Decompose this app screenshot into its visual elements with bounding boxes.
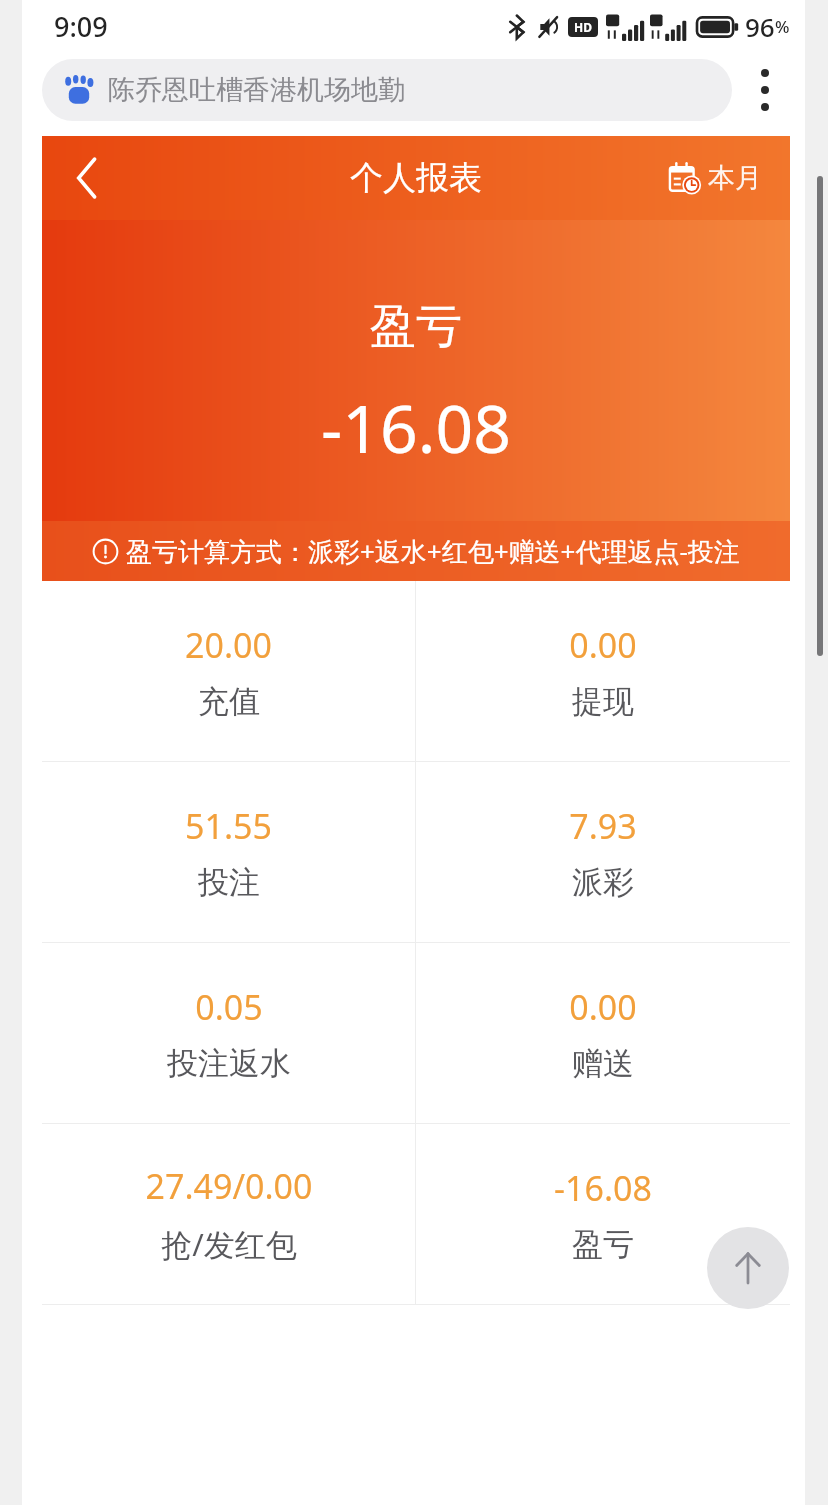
button[interactable]: More options: [732, 52, 798, 128]
staticText: 51.55: [185, 803, 272, 849]
staticText: -16.08: [321, 382, 511, 472]
button[interactable]: 7.93: [416, 762, 790, 942]
button[interactable]: 0.00: [416, 943, 790, 1123]
staticText: 投注: [198, 863, 260, 902]
staticText: 0.05: [195, 984, 263, 1030]
staticText: -16.08: [554, 1165, 652, 1211]
button[interactable]: 陈乔恩吐槽香港机场地勤: [42, 59, 732, 121]
staticText: 0.00: [569, 622, 637, 668]
staticText: 本月: [708, 161, 762, 195]
button[interactable]: -16.08: [416, 1124, 790, 1304]
staticText: 充值: [198, 682, 260, 721]
button[interactable]: 51.55: [42, 762, 415, 942]
staticText: 96: [745, 9, 775, 44]
staticText: 27.49/0.00: [145, 1163, 313, 1209]
button[interactable]: Back: [42, 136, 132, 220]
staticText: 20.00: [185, 622, 272, 668]
button[interactable]: 本月: [662, 153, 768, 203]
staticText: %: [775, 15, 790, 38]
button[interactable]: 0.00: [416, 581, 790, 761]
staticText: 盈亏: [572, 1225, 634, 1264]
staticText: 盈亏计算方式：派彩+返水+红包+赠送+代理返点-投注: [126, 533, 740, 569]
staticText: HD: [574, 19, 592, 35]
staticText: 投注返水: [167, 1044, 291, 1083]
staticText: 7.93: [569, 803, 637, 849]
staticText: 陈乔恩吐槽香港机场地勤: [108, 73, 405, 107]
staticText: 派彩: [572, 863, 634, 902]
staticText: 个人报表: [350, 157, 482, 199]
button[interactable]: 27.49/0.00: [42, 1124, 415, 1304]
staticText: 9:09: [54, 8, 108, 45]
staticText: 抢/发红包: [161, 1223, 297, 1265]
staticText: 0.00: [569, 984, 637, 1030]
button[interactable]: 20.00: [42, 581, 415, 761]
staticText: 赠送: [572, 1044, 634, 1083]
staticText: 盈亏: [370, 298, 462, 356]
staticText: 提现: [572, 682, 634, 721]
button[interactable]: Scroll to top: [707, 1227, 789, 1309]
button[interactable]: 0.05: [42, 943, 415, 1123]
